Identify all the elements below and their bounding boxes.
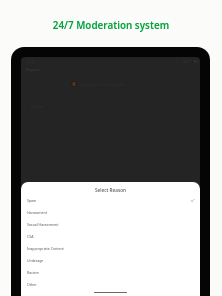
staticText: Inappropriate Content: [27, 246, 64, 251]
staticText: Racism: [27, 270, 39, 275]
button[interactable]: Inappropriate Content: [21, 242, 200, 254]
button[interactable]: Spam: [21, 194, 200, 206]
staticText: 24/7 Moderation system: [0, 18, 222, 31]
staticText: Report: [26, 67, 40, 73]
button[interactable]: Sexual Harassment: [21, 218, 200, 230]
staticText: Underage: [27, 258, 44, 263]
button[interactable]: Other: [21, 278, 200, 290]
staticText: Harassment: [27, 210, 47, 215]
staticText: Other: [27, 282, 37, 287]
button[interactable]: Underage: [21, 254, 200, 266]
staticText: Spam: [27, 198, 37, 203]
staticText: Select Reason: [21, 187, 200, 193]
button[interactable]: Harassment: [21, 206, 200, 218]
button[interactable]: CSA: [21, 230, 200, 242]
other: Selected: [191, 199, 194, 202]
staticText: CSA: [27, 234, 34, 239]
staticText: Sexual Harassment: [27, 222, 59, 227]
button[interactable]: Racism: [21, 266, 200, 278]
